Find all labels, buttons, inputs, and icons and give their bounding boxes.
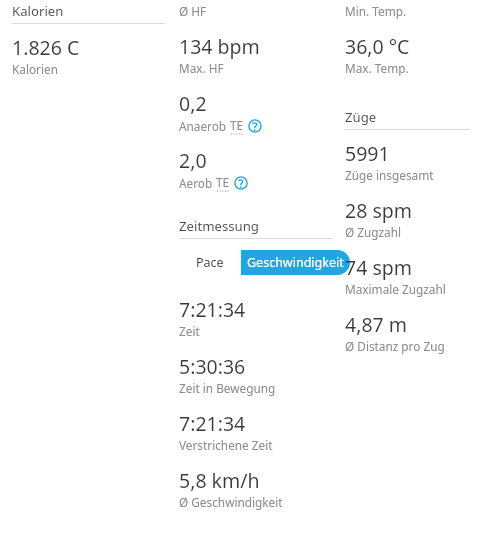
staticText: Züge insgesamt	[345, 167, 434, 183]
staticText: 28 spm	[345, 197, 412, 224]
staticText: 5991	[345, 140, 390, 167]
staticText: Maximale Zugzahl	[345, 281, 446, 297]
staticText: 5:30:36	[179, 353, 246, 380]
button[interactable]: Hilfe	[248, 119, 262, 133]
staticText: TE	[216, 174, 230, 190]
staticText: Aerob	[179, 175, 216, 191]
staticText: 74 spm	[345, 254, 412, 281]
staticText: Kalorien	[12, 2, 64, 20]
staticText: Max. Temp.	[345, 60, 409, 76]
button[interactable]: Hilfe	[234, 176, 248, 190]
staticText: Ø Zugzahl	[345, 224, 402, 240]
staticText: 134 bpm	[179, 33, 260, 60]
staticText: 1.826 C	[12, 34, 80, 61]
staticText: Max. HF	[179, 60, 224, 76]
staticText: Ø Geschwindigkeit	[179, 494, 283, 510]
staticText: 2,0	[179, 147, 207, 174]
staticText: 7:21:34	[179, 296, 246, 323]
staticText: Ø Distanz pro Zug	[345, 338, 445, 354]
staticText: Kalorien	[12, 61, 58, 77]
staticText: Verstrichene Zeit	[179, 437, 273, 453]
staticText: Zeit in Bewegung	[179, 380, 276, 396]
staticText: 36,0 °C	[345, 33, 410, 60]
staticText: Pace	[196, 254, 224, 271]
staticText: Geschwindigkeit	[247, 254, 344, 271]
button[interactable]: Pace	[179, 250, 241, 275]
staticText: 7:21:34	[179, 410, 246, 437]
staticText: Min. Temp.	[345, 3, 407, 19]
staticText: 0,2	[179, 90, 207, 117]
staticText: Zeit	[179, 323, 200, 339]
button[interactable]: Geschwindigkeit	[241, 250, 350, 275]
staticText: Anaerob	[179, 118, 230, 134]
staticText: TE	[230, 117, 244, 133]
staticText: 5,8 km/h	[179, 467, 260, 494]
staticText: 4,87 m	[345, 311, 407, 338]
staticText: Züge	[345, 108, 377, 126]
staticText: Zeitmessung	[179, 217, 259, 235]
staticText: Ø HF	[179, 3, 207, 19]
